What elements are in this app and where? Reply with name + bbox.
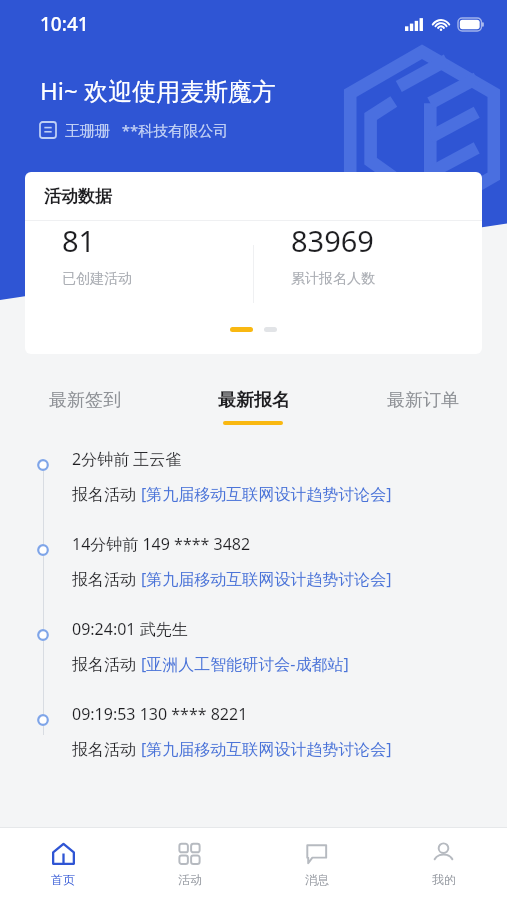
staticText: 14分钟前 149 **** 3482 (72, 533, 251, 555)
staticText: [第九届移动互联网设计趋势讨论会] (141, 568, 392, 590)
staticText: 报名活动 (72, 738, 141, 760)
staticText: 报名活动 (72, 483, 141, 505)
staticText: 09:24:01 武先生 (72, 618, 188, 640)
staticText: 最新订单 (387, 389, 459, 412)
staticText: 王珊珊 **科技有限公司 (65, 120, 229, 140)
staticText: [亚洲人工智能研讨会-成都站] (141, 653, 349, 675)
staticText: 已创建活动 (62, 270, 132, 288)
staticText: 81 (62, 221, 96, 260)
staticText: Hi~ 欢迎使用麦斯魔方 (40, 74, 276, 107)
button[interactable]: 首页 (0, 828, 126, 900)
staticText: 活动数据 (44, 186, 112, 207)
staticText: 报名活动 (72, 568, 141, 590)
staticText: 83969 (291, 221, 374, 260)
button[interactable]: 09:19:53 130 **** 8221 (0, 703, 507, 788)
staticText: 首页 (51, 872, 75, 887)
staticText: 09:19:53 130 **** 8221 (72, 703, 248, 725)
button[interactable]: 最新报名 (169, 379, 338, 421)
staticText: 报名活动 (72, 653, 141, 675)
staticText: 2分钟前 王云雀 (72, 448, 182, 470)
button[interactable]: 消息 (253, 828, 380, 900)
staticText: [第九届移动互联网设计趋势讨论会] (141, 738, 392, 760)
button[interactable]: 2分钟前 王云雀 (0, 448, 507, 533)
staticText: 活动 (178, 872, 202, 887)
staticText: 消息 (305, 872, 329, 887)
button[interactable]: 14分钟前 149 **** 3482 (0, 533, 507, 618)
button[interactable]: 活动数据 (25, 172, 482, 354)
staticText: 最新报名 (218, 389, 290, 412)
button[interactable]: 我的 (380, 828, 507, 900)
staticText: 最新签到 (49, 389, 121, 412)
button[interactable]: 09:24:01 武先生 (0, 618, 507, 703)
staticText: 10:41 (40, 11, 89, 37)
staticText: 累计报名人数 (291, 270, 375, 288)
button[interactable]: 最新订单 (338, 379, 507, 421)
button[interactable]: 最新签到 (0, 379, 169, 421)
staticText: [第九届移动互联网设计趋势讨论会] (141, 483, 392, 505)
staticText: 我的 (432, 872, 456, 887)
button[interactable]: 活动 (126, 828, 253, 900)
